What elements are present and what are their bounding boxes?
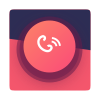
button[interactable]: Call bbox=[21, 18, 77, 74]
